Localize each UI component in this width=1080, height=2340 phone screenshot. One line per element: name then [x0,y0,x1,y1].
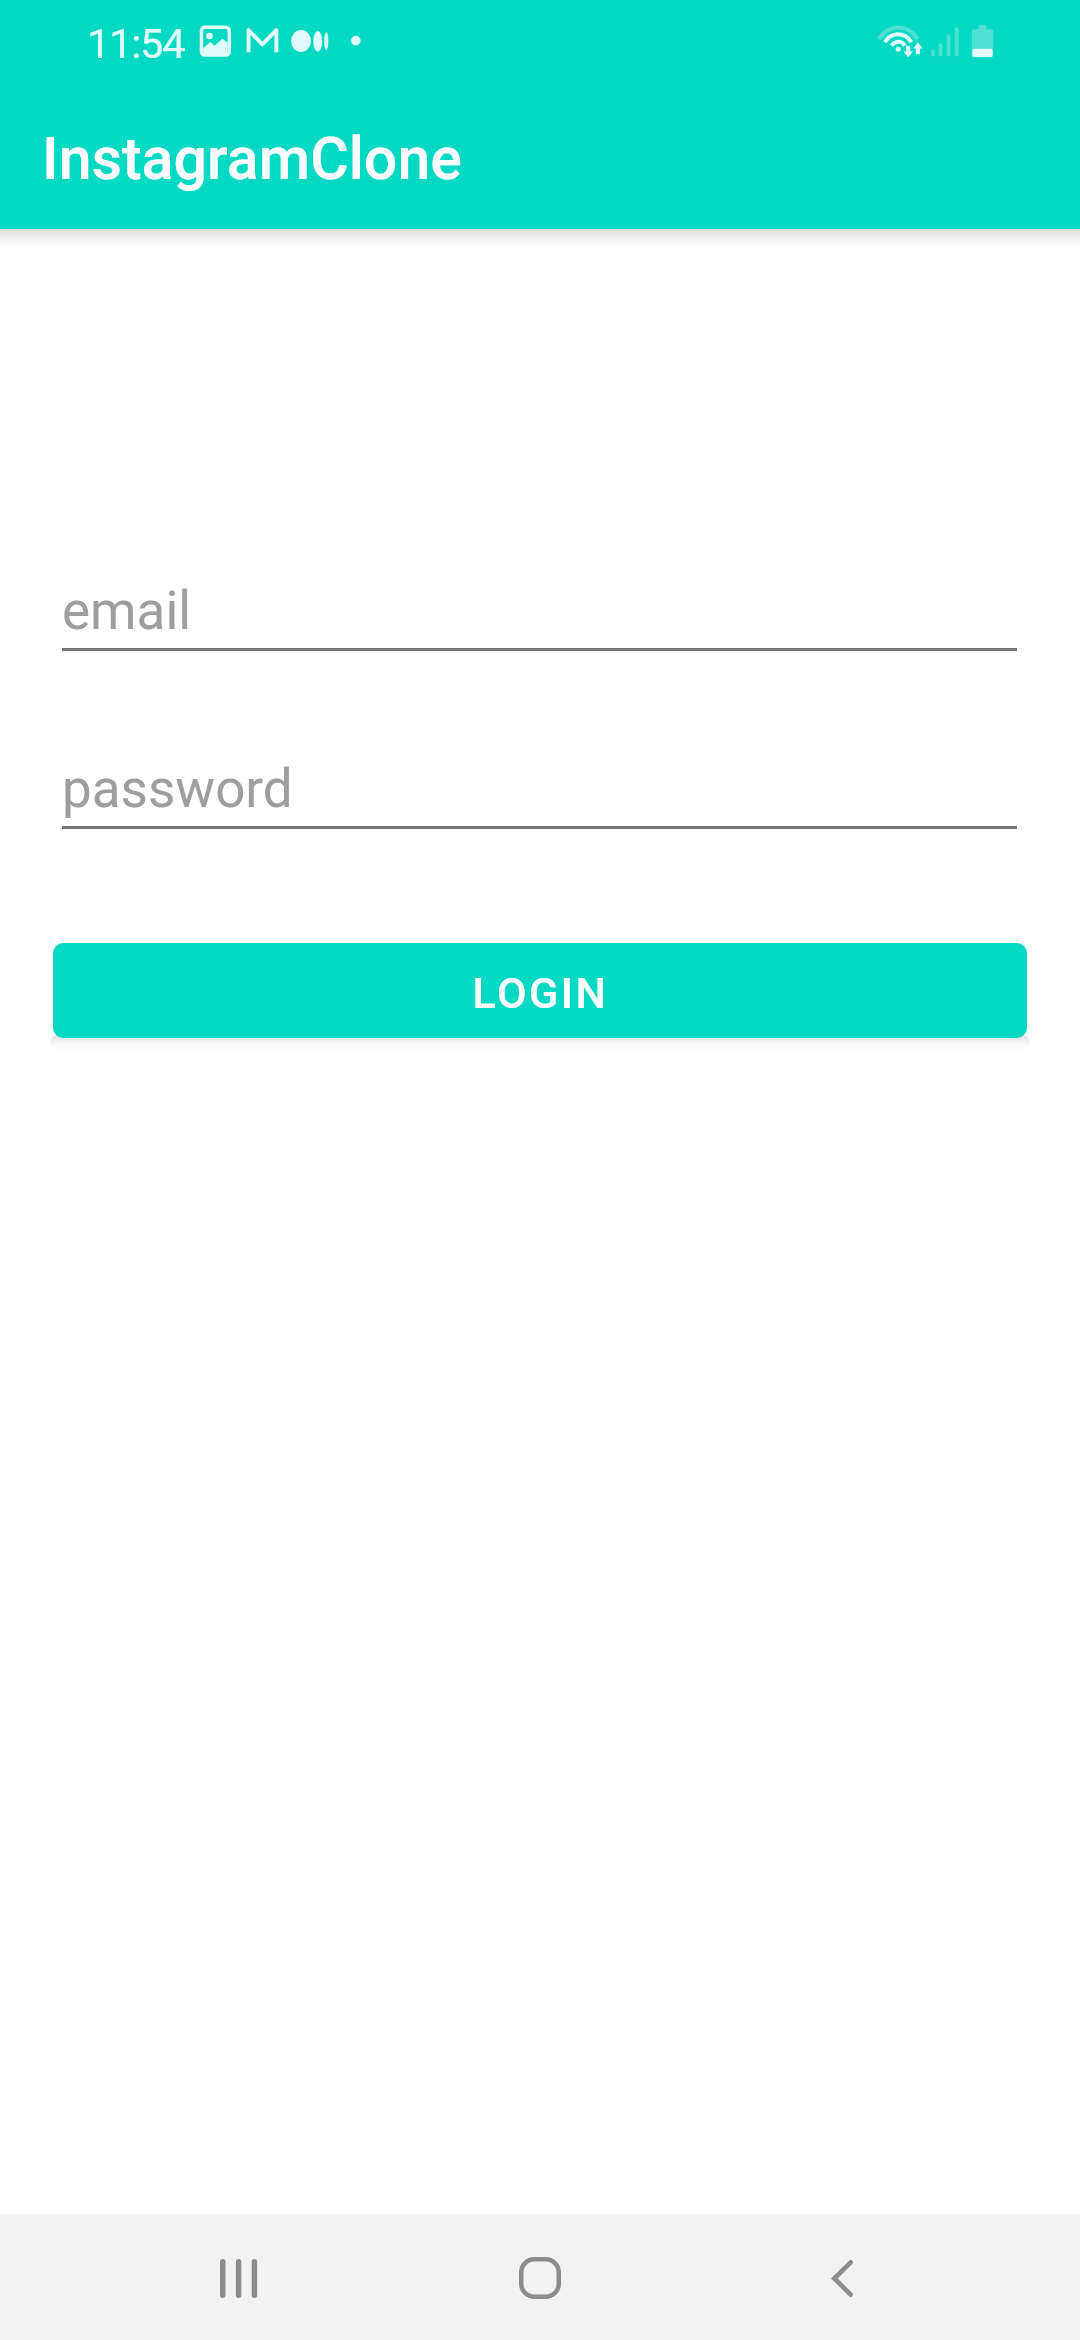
button[interactable]: Recent apps [175,2214,301,2340]
button[interactable]: password [62,737,1017,829]
staticText: password [62,758,293,820]
staticText: 11:54 [87,19,185,68]
button[interactable]: email [62,559,1017,651]
staticText: InstagramClone [42,124,462,193]
button[interactable]: Back [779,2214,905,2340]
staticText: LOGIN [472,968,609,1018]
button[interactable]: LOGIN [53,943,1027,1038]
other: Status icons [0,0,1080,84]
button[interactable]: Home [477,2214,603,2340]
staticText: email [62,580,192,642]
